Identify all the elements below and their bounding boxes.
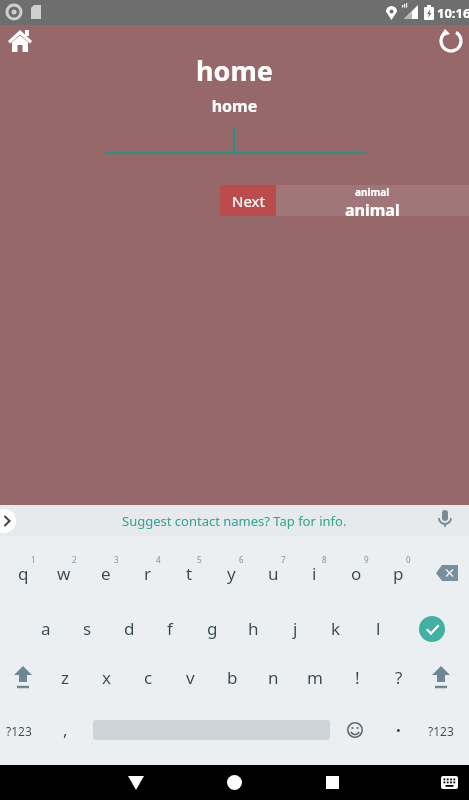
staticText: g: [207, 617, 218, 640]
button[interactable]: b: [211, 658, 253, 696]
button[interactable]: [430, 765, 469, 800]
button[interactable]: t: [168, 554, 210, 592]
button[interactable]: [2, 658, 44, 696]
button[interactable]: animal: [220, 185, 469, 216]
staticText: s: [83, 617, 92, 640]
button[interactable]: c: [127, 658, 169, 696]
button[interactable]: z: [44, 658, 86, 696]
staticText: y: [227, 562, 236, 585]
button[interactable]: ?123: [428, 723, 454, 739]
button[interactable]: o: [335, 554, 377, 592]
button[interactable]: [420, 658, 462, 696]
button[interactable]: g: [191, 609, 233, 647]
staticText: f: [167, 617, 173, 640]
staticText: !: [355, 666, 360, 689]
staticText: d: [124, 617, 135, 640]
button[interactable]: n: [252, 658, 294, 696]
staticText: ?: [395, 666, 403, 689]
staticText: 1: [31, 554, 36, 565]
button[interactable]: w: [43, 554, 85, 592]
button[interactable]: [437, 27, 465, 55]
button[interactable]: [347, 722, 363, 738]
staticText: j: [293, 617, 298, 640]
staticText: h: [248, 617, 259, 640]
staticText: 4: [156, 554, 161, 565]
button[interactable]: [214, 765, 254, 800]
button[interactable]: u: [252, 554, 294, 592]
button[interactable]: !: [336, 658, 378, 696]
staticText: animal: [345, 199, 400, 216]
staticText: b: [227, 666, 238, 689]
button[interactable]: m: [294, 658, 336, 696]
staticText: v: [186, 666, 195, 689]
staticText: q: [18, 562, 29, 585]
staticText: home: [0, 52, 469, 89]
staticText: u: [268, 562, 279, 585]
button[interactable]: [116, 765, 156, 800]
staticText: 7: [281, 554, 286, 565]
button[interactable]: h: [232, 609, 274, 647]
button[interactable]: s: [66, 609, 108, 647]
staticText: e: [101, 562, 111, 585]
button[interactable]: ?: [378, 658, 420, 696]
button[interactable]: l: [357, 609, 399, 647]
button[interactable]: Next: [220, 185, 276, 216]
staticText: k: [331, 617, 341, 640]
button[interactable]: .: [396, 714, 401, 737]
staticText: i: [312, 562, 317, 585]
button[interactable]: e: [85, 554, 127, 592]
staticText: animal: [355, 185, 390, 199]
button[interactable]: ?123: [6, 723, 32, 739]
staticText: 8: [322, 554, 327, 565]
button[interactable]: j: [274, 609, 316, 647]
button[interactable]: v: [169, 658, 211, 696]
staticText: z: [61, 666, 69, 689]
button[interactable]: x: [85, 658, 127, 696]
staticText: m: [307, 666, 323, 689]
staticText: a: [41, 617, 51, 640]
staticText: 5: [197, 554, 202, 565]
button[interactable]: [419, 616, 445, 642]
button[interactable]: i: [293, 554, 335, 592]
button[interactable]: [312, 765, 352, 800]
staticText: Suggest contact names? Tap for info.: [122, 512, 347, 530]
staticText: c: [144, 666, 153, 689]
staticText: p: [393, 562, 404, 585]
staticText: w: [57, 562, 71, 585]
button[interactable]: p: [377, 554, 419, 592]
staticText: 10:16: [437, 4, 469, 22]
staticText: 6: [239, 554, 244, 565]
staticText: t: [186, 562, 193, 585]
button[interactable]: d: [108, 609, 150, 647]
staticText: o: [351, 562, 362, 585]
staticText: 0: [406, 554, 411, 565]
button[interactable]: Suggest contact names? Tap for info.: [0, 505, 469, 536]
button[interactable]: [6, 27, 34, 55]
button[interactable]: y: [210, 554, 252, 592]
staticText: 3: [114, 554, 119, 565]
staticText: home: [0, 95, 469, 117]
button[interactable]: ,: [63, 718, 68, 741]
button[interactable]: q: [2, 554, 44, 592]
staticText: Next: [232, 191, 265, 211]
staticText: r: [144, 562, 152, 585]
staticText: 2: [72, 554, 77, 565]
button[interactable]: r: [127, 554, 169, 592]
button[interactable]: [426, 554, 468, 592]
staticText: 9: [364, 554, 369, 565]
button[interactable]: a: [25, 609, 67, 647]
staticText: x: [102, 666, 111, 689]
button[interactable]: k: [315, 609, 357, 647]
staticText: l: [376, 617, 381, 640]
button[interactable]: f: [149, 609, 191, 647]
staticText: n: [268, 666, 279, 689]
